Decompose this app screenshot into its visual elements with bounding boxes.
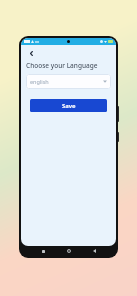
staticText: Save: [62, 102, 76, 110]
button[interactable]: Save: [30, 99, 107, 112]
button[interactable]: english: [26, 74, 111, 89]
button[interactable]: Back: [26, 48, 36, 58]
staticText: english: [30, 78, 49, 85]
button[interactable]: Recent apps: [39, 247, 47, 255]
staticText: Choose your Language: [26, 61, 98, 70]
button[interactable]: Home: [65, 247, 73, 255]
button[interactable]: Back: [90, 247, 98, 255]
